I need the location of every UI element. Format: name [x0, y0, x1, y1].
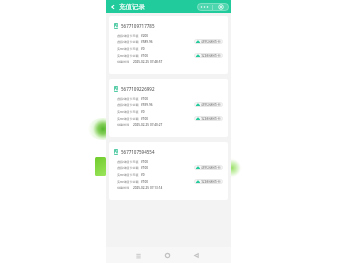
- staticText: 虚拟储值卡充值: [117, 97, 139, 101]
- button[interactable]: Recents: [130, 247, 146, 263]
- button[interactable]: 实物储值卡: [194, 116, 223, 121]
- staticText: 创建时间: [117, 186, 130, 190]
- staticText: 虚拟储值卡: [201, 102, 221, 107]
- staticText: 创建时间: [117, 60, 130, 64]
- staticText: ¥589.96: [141, 40, 153, 44]
- staticText: 5677109717785: [121, 23, 155, 29]
- staticText: ¥100: [141, 97, 149, 101]
- staticText: 2025-02-25 07:48:57: [133, 60, 163, 64]
- staticText: 虚拟储值卡充值: [117, 160, 139, 164]
- staticText: 2025-02-25 07:13:14: [133, 186, 163, 190]
- staticText: 虚拟储值卡: [201, 39, 221, 44]
- button[interactable]: Close: [213, 3, 229, 11]
- staticText: 实物储值卡充值: [117, 173, 139, 177]
- staticText: 虚拟储值卡充值: [117, 34, 139, 38]
- staticText: 虚拟储值卡: [201, 165, 221, 170]
- button[interactable]: More options: [197, 3, 212, 11]
- button[interactable]: 虚拟储值卡: [194, 39, 223, 44]
- staticText: 虚拟储值卡余额: [117, 166, 139, 170]
- staticText: 实物储值卡: [201, 179, 221, 184]
- staticText: 2025-02-25 07:40:27: [133, 123, 163, 127]
- staticText: ¥599.96: [141, 103, 153, 107]
- staticText: ¥0: [141, 173, 145, 177]
- staticText: 虚拟储值卡余额: [117, 103, 139, 107]
- staticText: ¥100: [141, 117, 149, 121]
- button[interactable]: Home: [159, 247, 175, 263]
- staticText: 实物储值卡余额: [117, 117, 139, 121]
- staticText: 充值记录: [119, 3, 145, 11]
- button[interactable]: Back: [188, 247, 204, 263]
- staticText: 实物储值卡: [201, 116, 221, 121]
- button[interactable]: Back: [109, 3, 117, 11]
- staticText: 虚拟储值卡余额: [117, 40, 139, 44]
- button[interactable]: 实物储值卡: [194, 53, 223, 58]
- staticText: ¥0: [141, 47, 145, 51]
- staticText: 实物储值卡充值: [117, 110, 139, 114]
- staticText: 5677107594554: [121, 149, 155, 155]
- staticText: ¥0: [141, 110, 145, 114]
- button[interactable]: 实物储值卡: [194, 179, 223, 184]
- staticText: 实物储值卡余额: [117, 54, 139, 58]
- button[interactable]: 5677109226992: [109, 79, 228, 137]
- staticText: 实物储值卡余额: [117, 180, 139, 184]
- button[interactable]: 5677109717785: [109, 16, 228, 74]
- staticText: ¥100: [141, 180, 149, 184]
- button[interactable]: 虚拟储值卡: [194, 165, 223, 170]
- button[interactable]: 5677107594554: [109, 142, 228, 200]
- staticText: ¥200: [141, 34, 149, 38]
- staticText: 实物储值卡充值: [117, 47, 139, 51]
- button[interactable]: 虚拟储值卡: [194, 102, 223, 107]
- staticText: ¥100: [141, 160, 149, 164]
- staticText: ¥100: [141, 54, 149, 58]
- staticText: ¥100: [141, 166, 149, 170]
- staticText: 创建时间: [117, 123, 130, 127]
- staticText: 实物储值卡: [201, 53, 221, 58]
- staticText: 5677109226992: [121, 86, 155, 92]
